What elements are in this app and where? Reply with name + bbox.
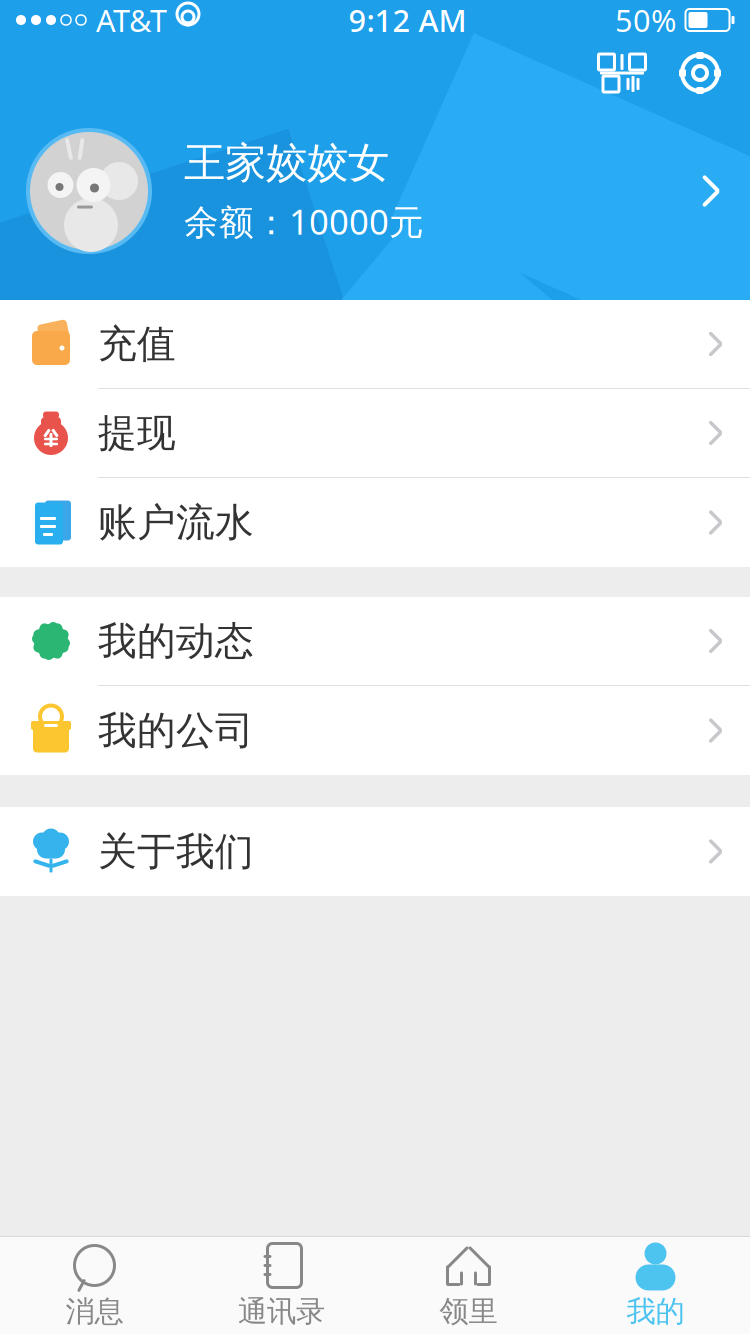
button[interactable]: 账户流水 — [0, 478, 750, 567]
button[interactable]: 我的动态 — [0, 597, 750, 686]
staticText: 通讯录 — [238, 1293, 325, 1329]
button[interactable]: 充值 — [0, 300, 750, 389]
button[interactable]: 王家姣姣女 — [0, 106, 750, 276]
staticText: 消息 — [65, 1293, 123, 1329]
staticText: 我的公司 — [98, 707, 254, 754]
button[interactable]: 关于我们 — [0, 807, 750, 896]
button[interactable]: 设置 — [668, 41, 732, 105]
button[interactable]: 消息 — [1, 1236, 188, 1334]
staticText: 余额：10000元 — [184, 198, 424, 244]
staticText: 我的动态 — [98, 617, 254, 665]
button[interactable]: 领里 — [375, 1236, 562, 1334]
button[interactable]: 通讯录 — [188, 1236, 375, 1334]
button[interactable]: 我的 — [562, 1236, 749, 1334]
staticText: 账户流水 — [98, 499, 254, 546]
staticText: 我的 — [626, 1293, 684, 1329]
staticText: 关于我们 — [98, 828, 254, 875]
staticText: 50% — [615, 0, 676, 40]
staticText: 9:12 AM — [348, 0, 466, 40]
button[interactable]: 我的公司 — [0, 686, 750, 775]
staticText: AT&T — [96, 0, 167, 40]
button[interactable]: 提现 — [0, 389, 750, 478]
button[interactable]: 扫一扫 — [590, 41, 654, 105]
staticText: 王家姣姣女 — [184, 138, 389, 188]
staticText: 提现 — [98, 409, 176, 457]
staticText: 领里 — [439, 1293, 497, 1329]
staticText: 充值 — [98, 320, 176, 368]
